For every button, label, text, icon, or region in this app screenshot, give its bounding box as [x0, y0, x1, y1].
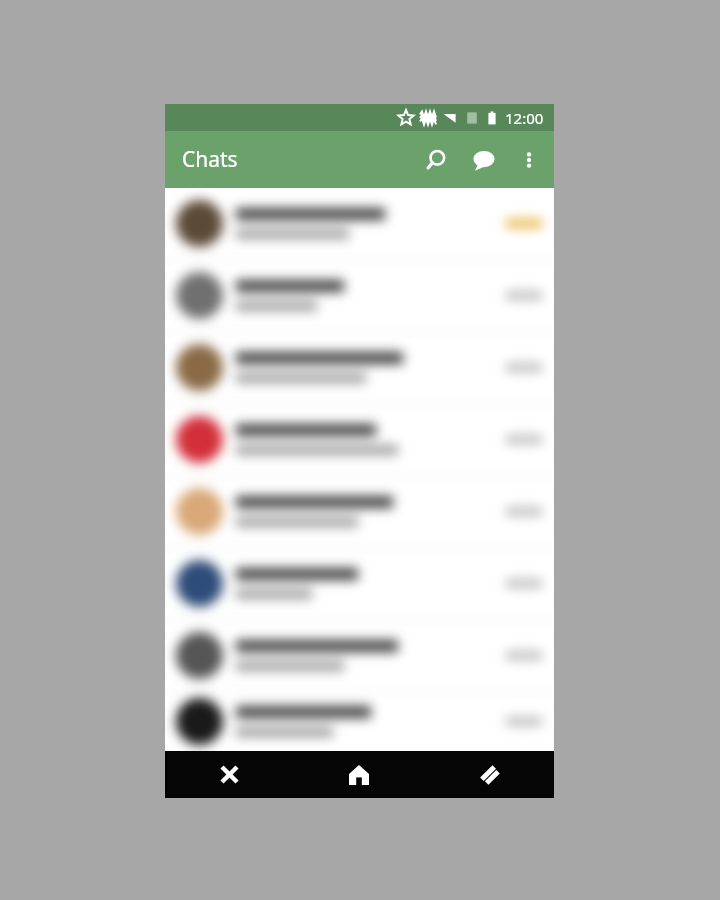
- button[interactable]: [165, 404, 554, 476]
- button[interactable]: [165, 476, 554, 548]
- button[interactable]: New chat: [460, 136, 508, 184]
- button[interactable]: [165, 548, 554, 620]
- staticText: 12:00: [505, 108, 544, 128]
- button[interactable]: Back: [165, 751, 294, 798]
- button[interactable]: [165, 260, 554, 332]
- button[interactable]: Search: [412, 136, 460, 184]
- button[interactable]: [165, 188, 554, 260]
- staticText: Chats: [182, 145, 238, 174]
- button[interactable]: Home: [294, 751, 424, 798]
- button[interactable]: [165, 692, 554, 751]
- button[interactable]: [165, 332, 554, 404]
- button[interactable]: [165, 620, 554, 692]
- button[interactable]: Recents: [424, 751, 554, 798]
- button[interactable]: More options: [508, 139, 550, 181]
